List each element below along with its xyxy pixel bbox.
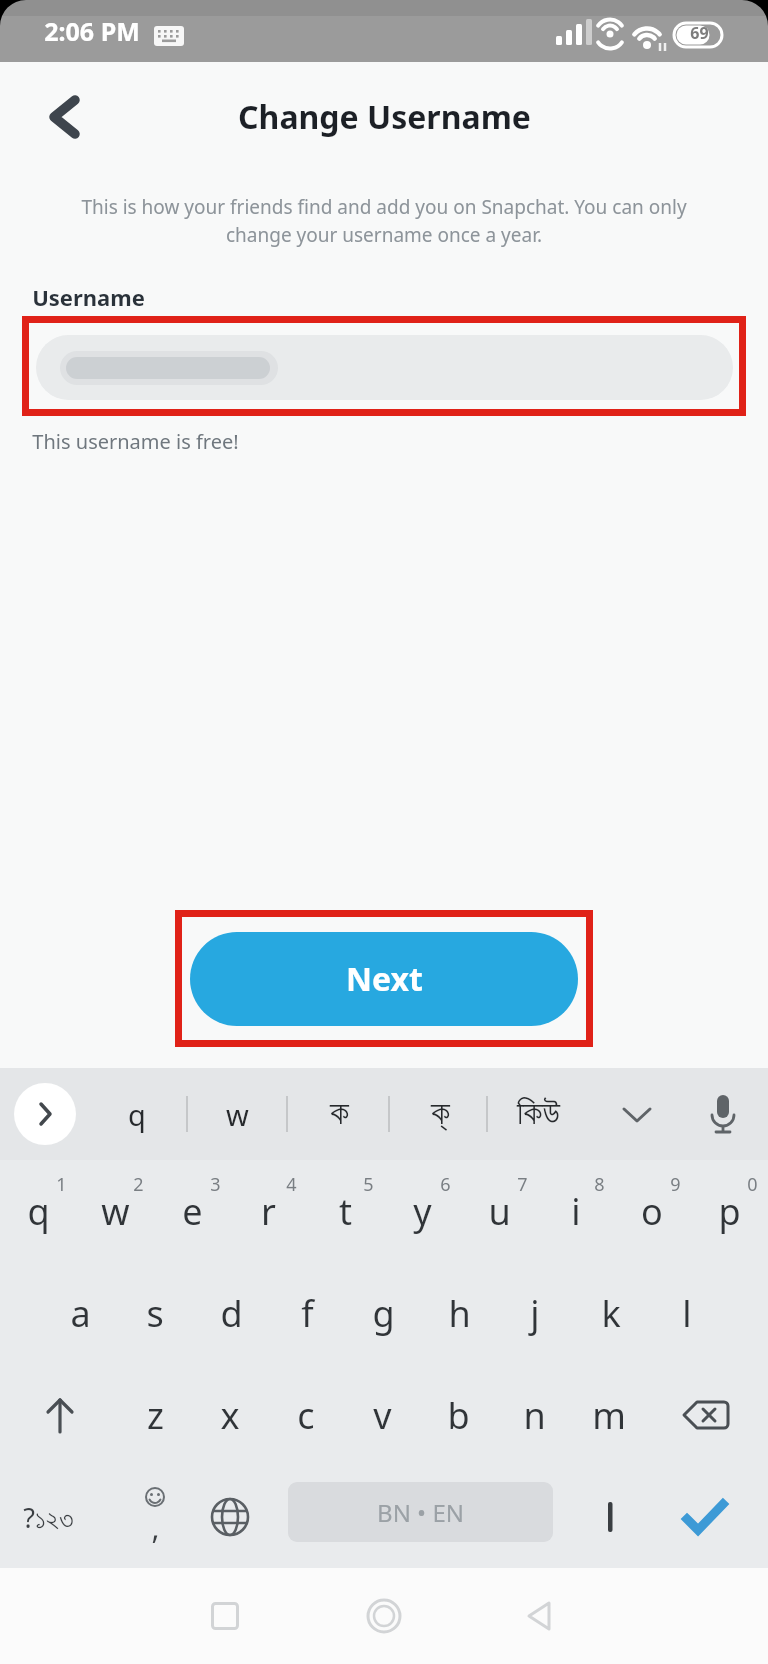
staticText: 0 (747, 1172, 758, 1197)
staticText: 4 (286, 1172, 297, 1197)
button[interactable]: Next (190, 932, 578, 1026)
staticText: Change Username (238, 95, 531, 139)
button[interactable]: q (0, 1161, 76, 1261)
staticText: f (301, 1289, 314, 1338)
staticText: h (448, 1289, 471, 1338)
staticText: x (220, 1391, 240, 1440)
staticText: This username is free! (32, 428, 239, 455)
staticText: d (220, 1289, 243, 1338)
button[interactable]: j (497, 1263, 573, 1363)
staticText: 1 (56, 1172, 67, 1197)
button[interactable] (354, 1586, 414, 1646)
staticText: 9 (670, 1172, 681, 1197)
staticText: 7 (517, 1172, 528, 1197)
button[interactable]: ক্ (392, 1078, 488, 1150)
staticText: q (27, 1187, 50, 1236)
staticText: a (70, 1289, 91, 1338)
staticText: k (601, 1289, 621, 1338)
button[interactable] (14, 1083, 76, 1145)
staticText: Username (32, 282, 145, 312)
button[interactable]: g (345, 1263, 421, 1363)
staticText: y (413, 1187, 432, 1236)
button[interactable]: w (189, 1078, 285, 1150)
staticText: 8 (594, 1172, 605, 1197)
staticText: t (339, 1187, 352, 1236)
button[interactable]: e (154, 1161, 230, 1261)
staticText: w (101, 1187, 130, 1236)
staticText: This is how your friends find and add yo… (81, 194, 687, 248)
staticText: 3 (210, 1172, 221, 1197)
button[interactable]: t (307, 1161, 383, 1261)
staticText: কিউ (517, 1098, 560, 1131)
button[interactable] (195, 1586, 255, 1646)
button[interactable]: q (89, 1078, 185, 1150)
staticText: , (151, 1507, 160, 1548)
button[interactable] (510, 1586, 570, 1646)
staticText: r (261, 1187, 276, 1236)
staticText: Next (346, 957, 423, 1001)
button[interactable]: কিউ (490, 1078, 586, 1150)
button[interactable]: s (117, 1263, 193, 1363)
staticText: e (182, 1187, 203, 1236)
button[interactable]: z (117, 1365, 193, 1465)
button[interactable]: d (193, 1263, 269, 1363)
button[interactable] (20, 1365, 100, 1465)
staticText: ক্ (431, 1098, 450, 1131)
button[interactable] (46, 97, 86, 137)
button[interactable]: p (691, 1161, 767, 1261)
button[interactable] (580, 1467, 640, 1567)
staticText: v (373, 1391, 392, 1440)
button[interactable] (190, 1467, 270, 1567)
button[interactable]: i (538, 1161, 614, 1261)
staticText: m (592, 1391, 626, 1440)
button[interactable]: v (344, 1365, 420, 1465)
staticText: 5 (363, 1172, 374, 1197)
button[interactable] (36, 335, 733, 400)
button[interactable]: f (269, 1263, 345, 1363)
button[interactable]: h (421, 1263, 497, 1363)
staticText: g (372, 1289, 395, 1338)
staticText: w (226, 1095, 249, 1134)
staticText: z (147, 1391, 164, 1440)
staticText: s (146, 1289, 164, 1338)
button[interactable]: w (77, 1161, 153, 1261)
button[interactable]: ক (291, 1078, 387, 1150)
staticText: 69 (690, 22, 709, 44)
button[interactable]: c (268, 1365, 344, 1465)
button[interactable]: b (420, 1365, 496, 1465)
button[interactable] (665, 1467, 745, 1567)
staticText: q (128, 1095, 146, 1134)
staticText: BN • EN (377, 1496, 464, 1529)
button[interactable]: n (496, 1365, 572, 1465)
staticText: 6 (440, 1172, 451, 1197)
button[interactable]: a (42, 1263, 118, 1363)
staticText: l (682, 1289, 692, 1338)
staticText: o (641, 1187, 663, 1236)
staticText: 2:06 PM (44, 14, 140, 48)
button[interactable]: r (230, 1161, 306, 1261)
button[interactable]: u (461, 1161, 537, 1261)
staticText: n (523, 1391, 546, 1440)
staticText: ক (330, 1098, 349, 1131)
staticText: j (530, 1289, 540, 1338)
staticText: b (447, 1391, 470, 1440)
button[interactable]: BN • EN (288, 1482, 553, 1542)
staticText: p (718, 1187, 741, 1236)
button[interactable]: l (649, 1263, 725, 1363)
staticText: 2 (133, 1172, 144, 1197)
staticText: c (297, 1391, 315, 1440)
button[interactable]: k (573, 1263, 649, 1363)
staticText: i (571, 1187, 581, 1236)
button[interactable]: x (192, 1365, 268, 1465)
button[interactable]: o (614, 1161, 690, 1261)
button[interactable]: y (384, 1161, 460, 1261)
staticText: u (488, 1187, 511, 1236)
button[interactable]: , (117, 1467, 193, 1567)
button[interactable]: m (571, 1365, 647, 1465)
button[interactable] (666, 1365, 746, 1465)
staticText: ?১২৩ (23, 1499, 74, 1536)
button[interactable]: ?১২৩ (3, 1467, 93, 1567)
